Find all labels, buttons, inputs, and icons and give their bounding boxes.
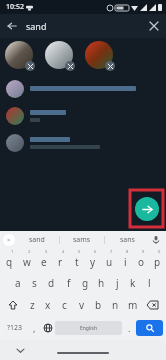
staticText: c <box>62 298 67 312</box>
button[interactable]: 3 <box>35 248 52 272</box>
button[interactable]: m <box>124 294 141 316</box>
button[interactable]: sans <box>105 231 149 248</box>
staticText: f <box>67 276 71 290</box>
button[interactable]: Hide keyboard <box>14 344 26 356</box>
staticText: r <box>58 255 63 269</box>
button[interactable] <box>0 75 166 102</box>
button[interactable]: 6 <box>85 248 101 272</box>
staticText: v <box>79 298 85 312</box>
staticText: sams <box>73 235 91 245</box>
button[interactable]: 0 <box>149 248 165 272</box>
staticText: sand <box>29 235 45 245</box>
staticText: sans <box>120 235 135 245</box>
staticText: s <box>32 276 37 290</box>
button[interactable]: l <box>141 272 157 294</box>
button[interactable]: 9 <box>133 248 149 272</box>
staticText: , <box>33 322 36 334</box>
button[interactable]: b <box>90 294 107 316</box>
staticText: 4 <box>62 249 65 254</box>
staticText: p <box>154 255 161 269</box>
staticText: 6 <box>94 249 97 254</box>
staticText: 10:52 <box>6 2 24 12</box>
button[interactable]: v <box>73 294 90 316</box>
staticText: 0 <box>158 249 161 254</box>
staticText: l <box>148 276 151 290</box>
staticText: x <box>45 298 51 312</box>
staticText: . <box>128 322 131 334</box>
button[interactable]: Clear search <box>142 14 166 38</box>
button[interactable]: Remove contact <box>85 41 117 73</box>
button[interactable]: n <box>107 294 124 316</box>
button[interactable]: z <box>24 294 40 316</box>
staticText: g <box>82 276 89 290</box>
button[interactable]: a <box>9 272 26 294</box>
staticText: j <box>116 276 119 290</box>
button[interactable]: Remove contact <box>45 41 77 73</box>
button[interactable]: 4 <box>52 248 69 272</box>
staticText: 7 <box>110 249 113 254</box>
button[interactable]: Period <box>122 316 136 340</box>
button[interactable]: More suggestions <box>3 234 15 246</box>
button[interactable]: sand <box>15 231 59 248</box>
staticText: i <box>124 255 127 269</box>
button[interactable]: English <box>55 321 122 335</box>
staticText: 8 <box>126 249 129 254</box>
button[interactable]: k <box>125 272 141 294</box>
button[interactable] <box>0 129 166 156</box>
staticText: w <box>23 255 31 269</box>
button[interactable]: 8 <box>117 248 133 272</box>
button[interactable]: h <box>93 272 109 294</box>
button[interactable]: Home <box>57 352 109 354</box>
button[interactable]: Remove contact <box>5 41 37 73</box>
button[interactable]: Change language <box>41 316 55 340</box>
staticText: English <box>80 325 98 332</box>
button[interactable]: ?123 <box>3 316 27 340</box>
button[interactable]: Voice input <box>149 233 163 247</box>
button[interactable] <box>0 102 166 129</box>
button[interactable]: 5 <box>69 248 85 272</box>
staticText: m <box>128 298 138 312</box>
staticText: sand <box>26 20 142 32</box>
button[interactable]: sams <box>60 231 104 248</box>
button[interactable]: Comma <box>27 316 41 340</box>
staticText: y <box>90 255 96 269</box>
staticText: h <box>98 276 105 290</box>
staticText: t <box>75 255 79 269</box>
button[interactable]: s <box>26 272 43 294</box>
staticText: a <box>15 276 21 290</box>
staticText: u <box>106 255 113 269</box>
staticText: 1 <box>11 249 14 254</box>
staticText: 3 <box>45 249 48 254</box>
staticText: e <box>41 255 47 269</box>
staticText: z <box>30 298 35 312</box>
staticText: 5 <box>78 249 81 254</box>
staticText: ?123 <box>7 323 23 333</box>
staticText: 9 <box>142 249 145 254</box>
staticText: q <box>6 255 13 269</box>
button[interactable]: 2 <box>18 248 35 272</box>
button[interactable]: j <box>109 272 125 294</box>
button[interactable]: g <box>77 272 93 294</box>
staticText: b <box>95 298 102 312</box>
staticText: 2 <box>28 249 31 254</box>
button[interactable]: f <box>60 272 77 294</box>
button[interactable]: c <box>56 294 73 316</box>
button[interactable]: Back <box>0 14 24 38</box>
button[interactable]: Shift <box>2 294 24 316</box>
button[interactable]: 1 <box>1 248 18 272</box>
staticText: o <box>138 255 145 269</box>
button[interactable]: Send <box>135 197 159 221</box>
staticText: > <box>7 236 11 244</box>
staticText: k <box>130 276 136 290</box>
button[interactable]: d <box>43 272 60 294</box>
button[interactable]: 7 <box>101 248 117 272</box>
staticText: d <box>48 276 55 290</box>
button[interactable]: x <box>40 294 56 316</box>
staticText: n <box>112 298 119 312</box>
button[interactable]: Backspace <box>141 294 164 316</box>
button[interactable]: Search <box>136 320 163 336</box>
